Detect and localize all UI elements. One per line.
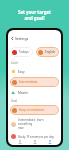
button[interactable]: Profile [46, 139, 53, 145]
button[interactable]: Home [16, 139, 23, 145]
button[interactable]: Todays [10, 47, 33, 57]
button[interactable]: Keep it consistent [10, 105, 59, 115]
staticText: Master [18, 91, 29, 95]
staticText: Intermediate [19, 80, 38, 84]
staticText: Study 15 sentences per day [18, 135, 54, 139]
staticText: English [45, 50, 56, 54]
button[interactable]: Search [31, 139, 38, 145]
button[interactable]: English [36, 47, 59, 57]
button[interactable]: Intermediate [10, 77, 59, 87]
staticText: Easy [18, 70, 25, 74]
button[interactable]: Back [10, 36, 15, 41]
staticText: Keep it consistent [19, 108, 44, 112]
staticText: Goal [11, 99, 18, 103]
staticText: Set your target and goal! [0, 9, 69, 22]
button[interactable]: Easy [11, 69, 58, 74]
staticText: Level [11, 61, 18, 65]
button[interactable]: Study 15 sentences per day [11, 134, 58, 139]
button[interactable]: Intermediate, learn something new [11, 118, 58, 130]
button[interactable]: Master [11, 90, 58, 95]
staticText: Todays [19, 50, 29, 54]
staticText: Intermediate, learn something new [18, 118, 58, 130]
staticText: Settings [15, 36, 29, 41]
